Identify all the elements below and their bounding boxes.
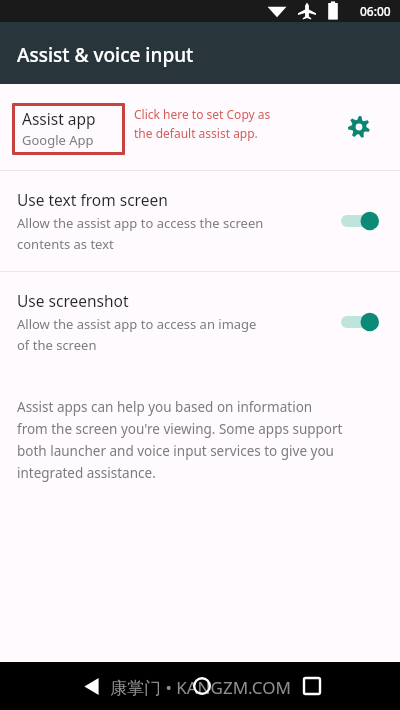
staticText: contents as text [17,235,114,253]
staticText: Click here to set Copy as [134,106,271,122]
staticText: both launcher and voice input services t… [17,442,334,460]
button[interactable]: Recent apps [295,669,329,703]
button[interactable]: Home [185,669,219,703]
button[interactable]: Toggle Use text from screen [338,199,382,243]
staticText: Use screenshot [17,290,129,311]
button[interactable]: Assist app settings [342,110,376,144]
staticText: the default assist app. [134,125,258,141]
staticText: Assist apps can help you based on inform… [17,398,313,416]
staticText: of the screen [17,336,97,354]
staticText: integrated assistance. [17,464,156,482]
staticText: Allow the assist app to access an image [17,315,257,333]
staticText: Assist & voice input [17,42,194,68]
button[interactable]: Toggle Use screenshot [338,300,382,344]
staticText: Use text from screen [17,189,168,210]
button[interactable]: Use text from screen [0,171,400,271]
staticText: Google App [22,131,94,149]
staticText: 06:00 [360,3,391,19]
button[interactable]: Back [74,669,108,703]
button[interactable]: Use screenshot [0,272,400,372]
staticText: Assist app [22,108,96,129]
staticText: Allow the assist app to access the scree… [17,214,264,232]
button[interactable]: Assist app [0,84,400,170]
staticText: 康掌门 • KANGZM.COM [110,676,291,699]
staticText: from the screen you're viewing. Some app… [17,420,343,438]
